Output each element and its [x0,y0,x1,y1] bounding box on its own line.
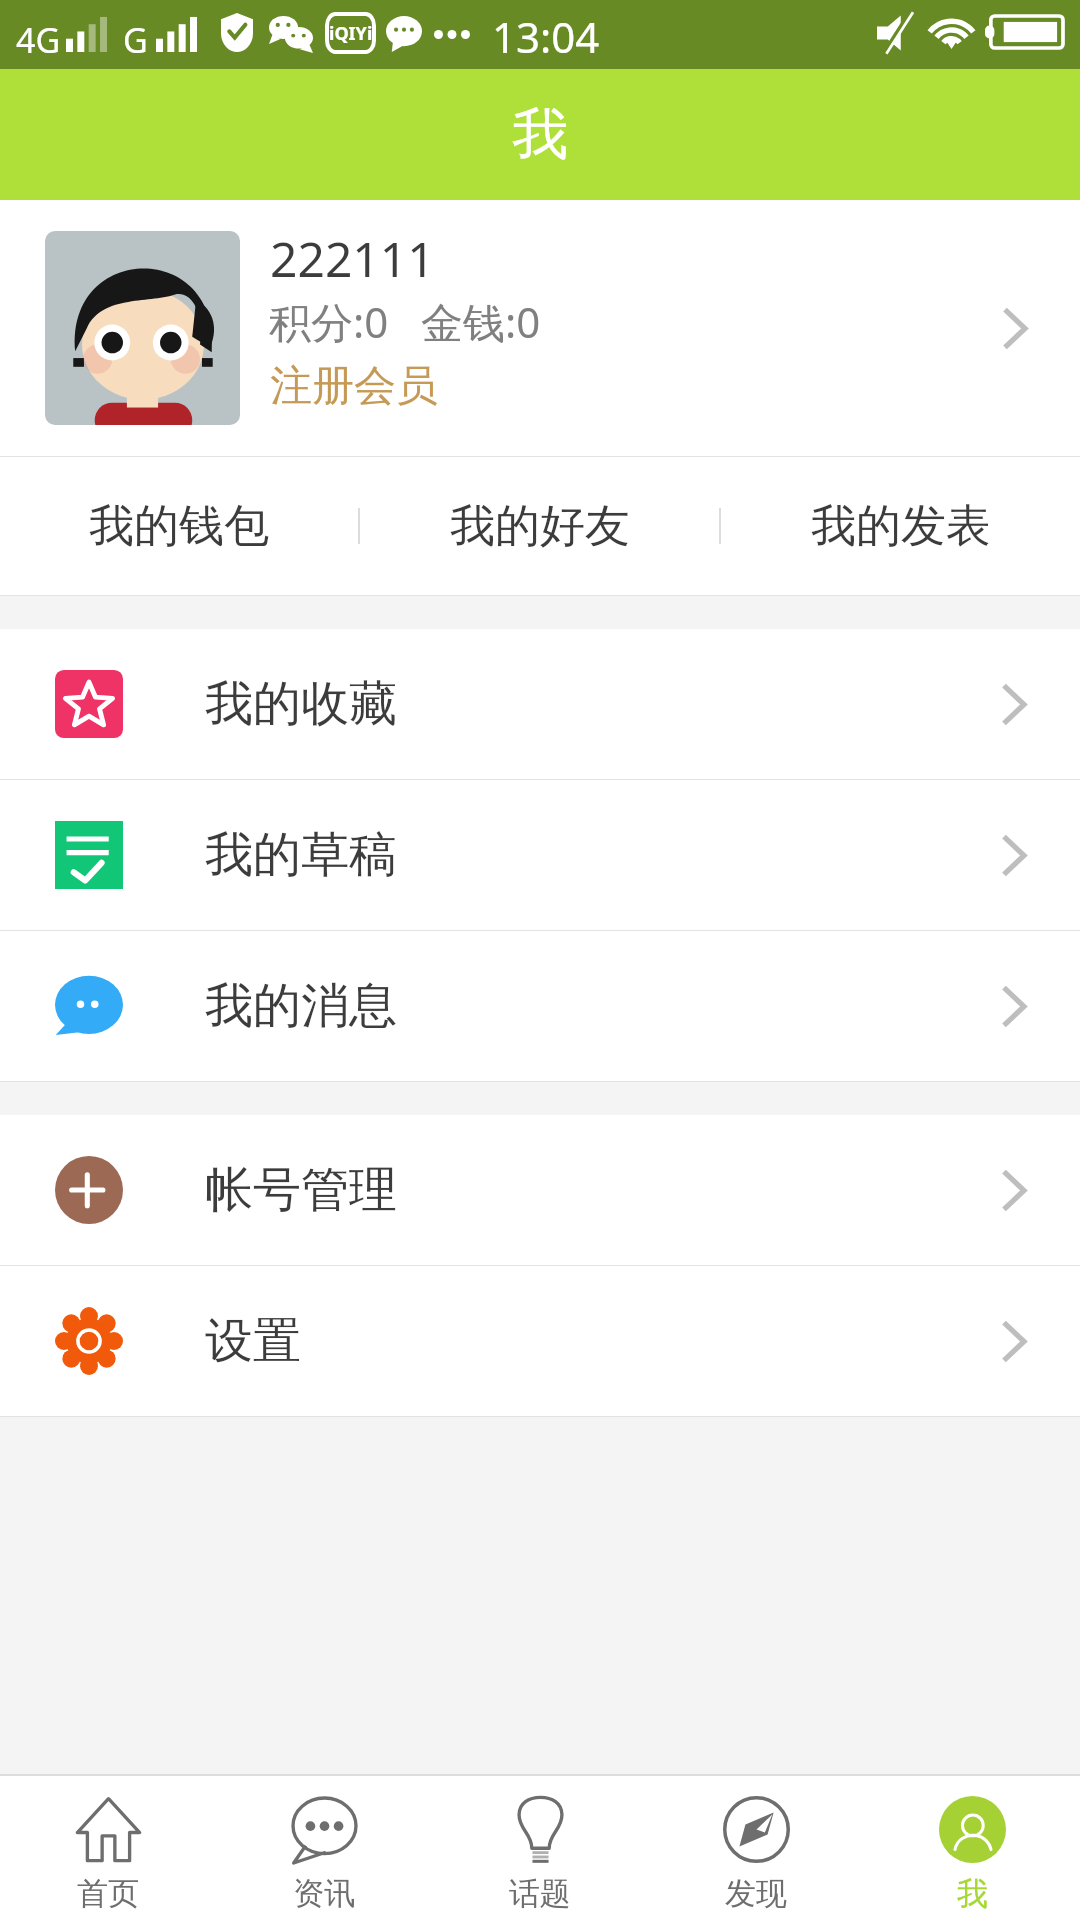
button[interactable]: 我的钱包 [0,457,358,595]
staticText: 13:04 [492,8,600,65]
staticText: 设置 [205,1311,301,1371]
button[interactable]: 我的草稿 [0,780,1080,930]
button[interactable]: 资讯 [216,1776,432,1920]
staticText: 4G [16,17,61,63]
staticText: 222111 [270,226,435,291]
button[interactable]: 帐号管理 [0,1115,1080,1265]
staticText: 资讯 [293,1874,355,1913]
other: 话题 [507,1796,574,1863]
button[interactable]: 222111 [0,200,1080,456]
other: 发现 [723,1796,790,1863]
button[interactable]: 我的好友 [360,457,719,595]
button[interactable]: 发现 [648,1776,864,1920]
button[interactable]: 话题 [432,1776,648,1920]
other: 我 [939,1796,1006,1863]
staticText: 注册会员 [270,360,438,413]
staticText: 我 [512,99,568,170]
button[interactable]: 我的收藏 [0,629,1080,779]
staticText: 帐号管理 [205,1160,397,1220]
staticText: iQIYi [329,21,373,46]
other: 资讯 [291,1796,358,1863]
button[interactable]: 设置 [0,1266,1080,1416]
other: 首页 [75,1796,142,1863]
button[interactable]: 首页 [0,1776,216,1920]
button[interactable]: 我的消息 [0,931,1080,1081]
staticText: 话题 [509,1874,571,1913]
staticText: 我的消息 [205,976,397,1036]
button[interactable]: 我的发表 [721,457,1080,595]
staticText: 我的收藏 [205,674,397,734]
staticText: 我的钱包 [89,498,269,555]
staticText: 首页 [77,1874,139,1913]
staticText: 发现 [725,1874,787,1913]
button[interactable]: 我 [864,1776,1080,1920]
staticText: 我的发表 [811,498,991,555]
staticText: G [123,17,148,63]
staticText: 我的草稿 [205,825,397,885]
staticText: 我的好友 [450,498,630,555]
staticText: 我 [957,1874,988,1913]
staticText: 积分:0 金钱:0 [269,293,541,350]
